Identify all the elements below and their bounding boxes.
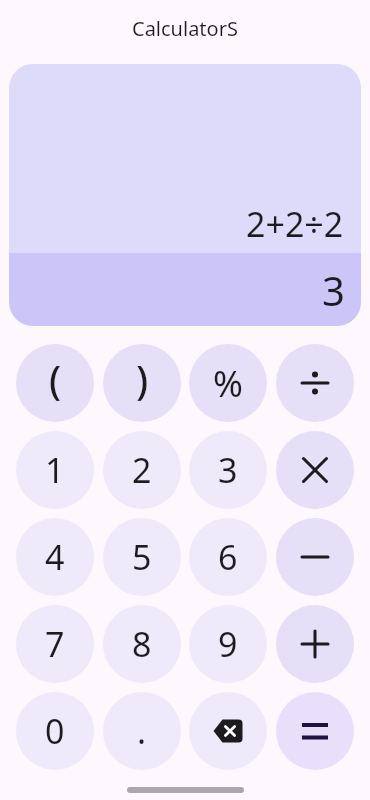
staticText: 2+2÷2: [246, 201, 344, 247]
staticText: (: [49, 353, 62, 406]
button[interactable]: [189, 692, 267, 770]
button[interactable]: [276, 518, 354, 596]
button[interactable]: 8: [103, 605, 181, 683]
staticText: 8: [132, 621, 152, 667]
button[interactable]: .: [103, 692, 181, 770]
staticText: 6: [218, 534, 238, 580]
button[interactable]: 3: [189, 431, 267, 509]
button[interactable]: 5: [103, 518, 181, 596]
button[interactable]: 4: [16, 518, 94, 596]
button[interactable]: [276, 692, 354, 770]
staticText: %: [213, 359, 243, 408]
button[interactable]: [276, 605, 354, 683]
staticText: 3: [218, 447, 238, 493]
staticText: 1: [45, 447, 65, 493]
button[interactable]: 7: [16, 605, 94, 683]
staticText: .: [137, 708, 147, 754]
button[interactable]: 2: [103, 431, 181, 509]
button[interactable]: [276, 344, 354, 422]
staticText: 9: [218, 621, 238, 667]
staticText: ): [136, 353, 149, 406]
staticText: 4: [45, 534, 65, 580]
staticText: 0: [45, 708, 65, 754]
button[interactable]: ): [103, 344, 181, 422]
button[interactable]: 1: [16, 431, 94, 509]
staticText: CalculatorS: [132, 15, 238, 42]
staticText: 7: [45, 621, 65, 667]
staticText: 3: [322, 263, 345, 317]
button[interactable]: 9: [189, 605, 267, 683]
button[interactable]: %: [189, 344, 267, 422]
button[interactable]: (: [16, 344, 94, 422]
button[interactable]: [276, 431, 354, 509]
staticText: 5: [132, 534, 152, 580]
button[interactable]: 0: [16, 692, 94, 770]
button[interactable]: 6: [189, 518, 267, 596]
staticText: 2: [132, 447, 152, 493]
